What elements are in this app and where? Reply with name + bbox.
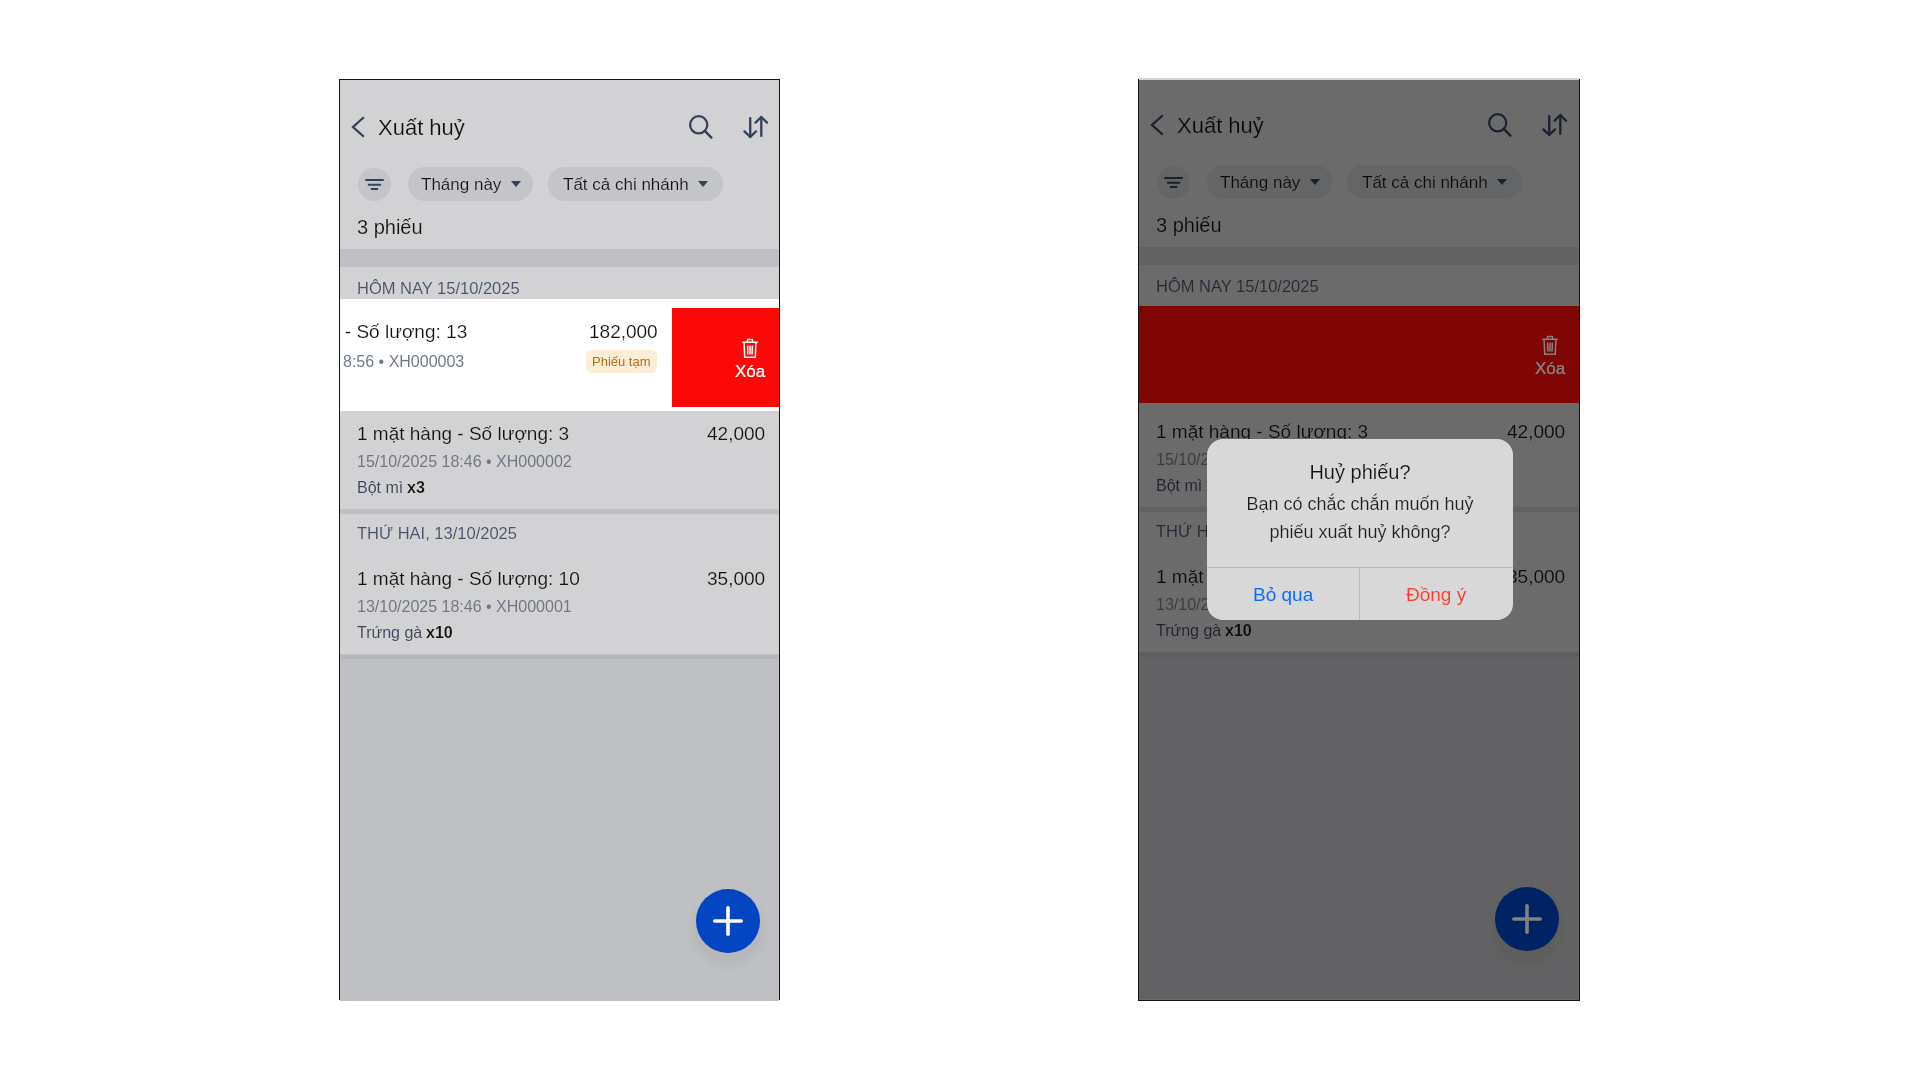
staticText: Xóa — [1535, 359, 1566, 378]
button[interactable]: Sort — [1533, 103, 1577, 147]
staticText: 13/10/2025 18:46 • XH000001 — [357, 598, 572, 616]
staticText: 1 mặt hàng - Số lượng: 10 — [357, 568, 580, 589]
staticText: Tất cả chi nhánh — [1362, 173, 1488, 192]
button[interactable]: 1 mặt hàng - Số lượng: 10 — [340, 568, 779, 658]
button[interactable]: Tất cả chi nhánh — [548, 167, 723, 201]
button[interactable]: Bỏ qua — [1207, 568, 1359, 620]
staticText: Xuất huỷ — [378, 115, 465, 140]
staticText: 3 phiếu — [357, 216, 423, 238]
button[interactable]: Add — [696, 889, 760, 953]
staticText: Phiếu tạm — [592, 354, 651, 369]
button[interactable]: Đồng ý — [1360, 568, 1513, 620]
button[interactable]: Search — [679, 105, 723, 149]
button[interactable]: 1 mặt hàng - Số lượng: 3 — [1139, 421, 1579, 511]
staticText: Trứng gà — [1156, 622, 1222, 640]
staticText: 3 phiếu — [1156, 214, 1222, 236]
staticText: 13/10/2025 18:46 • XH000001 — [1156, 596, 1371, 614]
staticText: Bột mì — [1156, 477, 1203, 495]
staticText: Tháng này — [421, 175, 502, 194]
staticText: HÔM NAY 15/10/2025 — [357, 279, 520, 297]
button[interactable]: 1 mặt hàng - Số lượng: 3 — [340, 423, 779, 513]
staticText: 1 mặt hàng - Số lượng: 10 — [1156, 566, 1379, 587]
staticText: x3 — [1206, 477, 1224, 495]
staticText: Bột mì — [357, 479, 404, 497]
staticText: Xuất huỷ — [1177, 113, 1264, 138]
staticText: HÔM NAY 15/10/2025 — [1156, 277, 1319, 295]
staticText: Bỏ qua — [1253, 584, 1314, 605]
button[interactable]: Back — [1141, 109, 1173, 141]
button[interactable]: Back — [342, 111, 374, 143]
button[interactable]: Tháng này — [408, 167, 533, 201]
staticText: g - Số lượng: 13 — [340, 321, 468, 342]
staticText: Trứng gà — [357, 624, 423, 642]
button[interactable]: Add — [1495, 887, 1559, 951]
staticText: THỨ HAI, 13/10/2025 — [357, 524, 517, 542]
button[interactable]: 1 mặt hàng - Số lượng: 10 — [1139, 566, 1579, 656]
staticText: Huỷ phiếu? — [1207, 461, 1513, 483]
staticText: 42,000 — [707, 423, 766, 444]
staticText: 1 mặt hàng - Số lượng: 3 — [357, 423, 570, 444]
staticText: x10 — [1225, 622, 1252, 640]
staticText: Bạn có chắc chắn muốn huỷ phiếu xuất huỷ… — [1239, 494, 1481, 542]
button[interactable]: Xóa — [1139, 306, 1579, 403]
staticText: 182,000 — [589, 321, 658, 342]
staticText: 35,000 — [707, 568, 766, 589]
staticText: THỨ HAI, 13/10/2025 — [1156, 522, 1316, 540]
button[interactable]: Filter — [358, 168, 391, 201]
staticText: 35,000 — [1507, 566, 1566, 587]
staticText: Tháng này — [1220, 173, 1301, 192]
button[interactable]: Xóa — [672, 308, 779, 407]
button[interactable]: Sort — [734, 105, 778, 149]
staticText: 15/10/2025 18:46 • XH000002 — [357, 453, 572, 471]
staticText: 1 mặt hàng - Số lượng: 3 — [1156, 421, 1369, 442]
button[interactable]: Tất cả chi nhánh — [1347, 165, 1522, 199]
staticText: Tất cả chi nhánh — [563, 175, 689, 194]
staticText: Xóa — [735, 362, 766, 381]
staticText: x10 — [426, 624, 453, 642]
staticText: Đồng ý — [1406, 584, 1467, 605]
button[interactable]: Tháng này — [1207, 165, 1332, 199]
staticText: x3 — [407, 479, 425, 497]
staticText: 15/10/2025 18:46 • XH000002 — [1156, 451, 1371, 469]
button[interactable]: Search — [1478, 103, 1522, 147]
button[interactable]: Filter — [1157, 166, 1190, 199]
staticText: 8:56 • XH000003 — [343, 353, 465, 371]
staticText: 42,000 — [1507, 421, 1566, 442]
